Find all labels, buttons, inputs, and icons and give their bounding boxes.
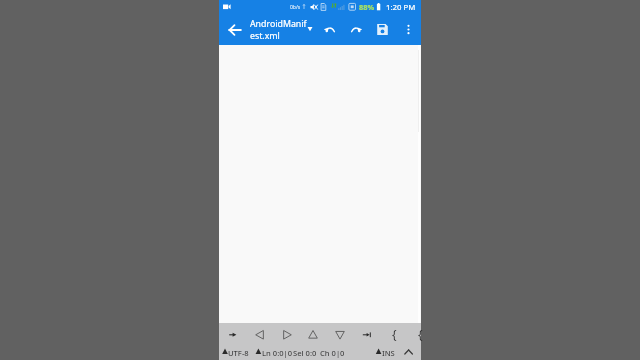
button[interactable]: Down (327, 323, 353, 344)
button[interactable]: Tab (220, 323, 246, 344)
button[interactable]: Right (274, 323, 300, 344)
staticText: Sel 0:0 (293, 348, 317, 358)
button[interactable]: Brace (381, 323, 407, 344)
staticText: Ln 0:0|0 (262, 348, 293, 358)
button[interactable]: Redo (343, 16, 369, 43)
button[interactable]: End (354, 323, 380, 344)
staticText: { (392, 326, 397, 342)
staticText: AndroidManif (250, 18, 307, 30)
button[interactable]: Undo (316, 16, 342, 43)
staticText: UTF-8 (228, 348, 249, 358)
button[interactable]: Save (369, 16, 395, 43)
button[interactable]: Brace2 (407, 323, 433, 344)
button[interactable]: Back (222, 17, 248, 43)
button[interactable]: Choose file (301, 18, 319, 36)
staticText: { (418, 326, 423, 342)
staticText: INS (382, 348, 395, 358)
button[interactable]: More options (395, 16, 421, 43)
staticText: 88% (359, 2, 375, 12)
staticText: Ch 0|0 (320, 348, 345, 358)
staticText: 0b/s (290, 4, 301, 11)
button[interactable]: Left (247, 323, 273, 344)
button[interactable]: AndroidManif (250, 18, 308, 42)
staticText: 1:20 PM (386, 2, 416, 13)
button[interactable]: Up (300, 323, 326, 344)
staticText: est.xml (250, 30, 280, 42)
